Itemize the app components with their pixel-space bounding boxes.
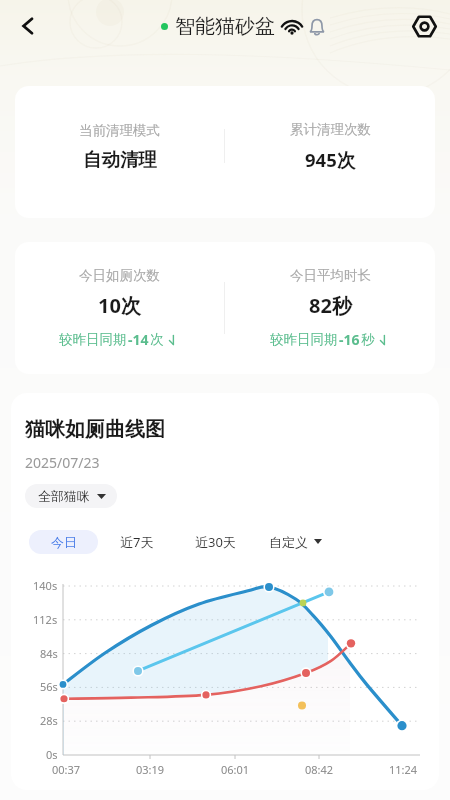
staticText: 0s [46,747,58,762]
staticText: 今日平均时长 [290,267,371,284]
staticText: 当前清理模式 [79,122,160,139]
staticText: 较昨日同期 [59,331,127,348]
button[interactable]: 今日 [29,530,98,554]
staticText: 累计清理次数 [290,121,371,138]
button[interactable]: 近7天 [98,529,175,554]
staticText: 次 [150,331,164,348]
staticText: 今日如厕次数 [79,267,160,284]
staticText: 自定义 [269,534,308,550]
staticText: 自动清理 [83,148,157,171]
button[interactable]: 全部猫咪 [25,484,117,508]
staticText: 全部猫咪 [38,488,90,504]
button[interactable]: 自定义 [255,529,335,554]
staticText: 00:37 [52,762,81,777]
staticText: 11:24 [389,762,418,777]
button[interactable]: 近30天 [175,529,255,554]
staticText: 较昨日同期 [270,331,338,348]
staticText: 今日 [51,534,77,550]
staticText: 近30天 [195,533,236,551]
staticText: 28s [40,713,58,728]
staticText: 秒 [361,331,375,348]
staticText: 10次 [98,292,141,319]
staticText: 112s [33,612,58,627]
button[interactable]: 当前清理模式 [15,86,435,218]
staticText: -14 [128,330,149,349]
staticText: 03:19 [136,762,165,777]
staticText: 08:42 [305,762,334,777]
staticText: 猫咪如厕曲线图 [25,417,165,442]
staticText: 06:01 [221,762,250,777]
button[interactable]: 今日如厕次数 [15,242,435,374]
staticText: 智能猫砂盆 [175,14,275,39]
staticText: 82秒 [309,292,352,319]
staticText: 近7天 [120,533,154,551]
button[interactable]: Back [10,8,46,44]
staticText: 2025/07/23 [25,453,100,472]
staticText: 945次 [305,147,356,172]
staticText: 140s [33,578,58,593]
staticText: -16 [339,330,360,349]
button[interactable]: Settings [406,8,442,44]
staticText: 56s [40,679,58,694]
staticText: 84s [40,646,58,661]
